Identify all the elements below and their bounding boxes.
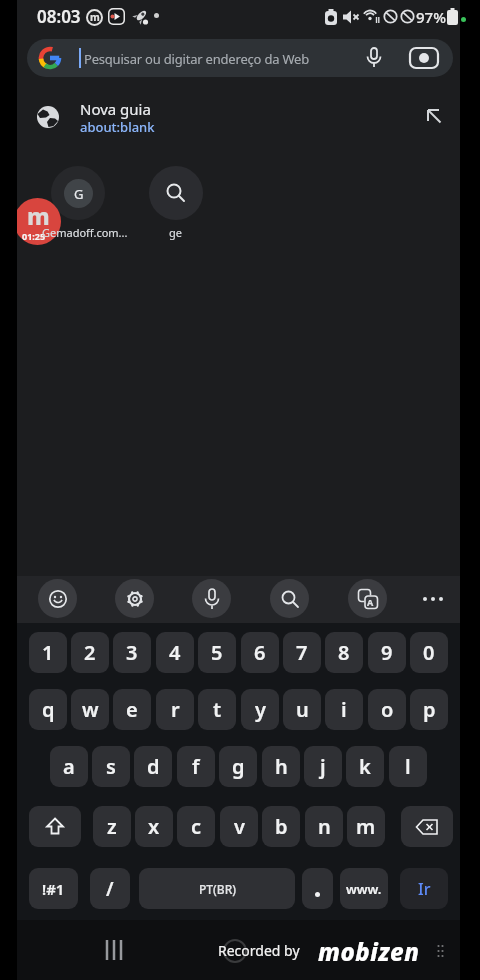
- staticText: 01:25: [22, 230, 46, 242]
- staticText: 08:03: [37, 5, 81, 28]
- button[interactable]: j: [304, 746, 342, 787]
- staticText: Gemadoff.com...: [42, 225, 128, 240]
- staticText: mobizen: [318, 935, 420, 968]
- button[interactable]: 2: [71, 632, 109, 673]
- button[interactable]: o: [368, 689, 406, 730]
- button[interactable]: Nova guia: [17, 88, 460, 143]
- button[interactable]: f: [177, 746, 215, 787]
- button[interactable]: w: [71, 689, 109, 730]
- staticText: m: [27, 200, 50, 231]
- staticText: q: [42, 696, 55, 723]
- button[interactable]: s: [92, 746, 130, 787]
- staticText: a: [63, 753, 75, 780]
- button[interactable]: 0: [410, 632, 448, 673]
- staticText: Pesquisar ou digitar endereço da Web: [84, 50, 310, 68]
- button[interactable]: [270, 579, 309, 618]
- button[interactable]: Pesquisar ou digitar endereço da Web: [27, 39, 453, 77]
- staticText: 97%: [416, 7, 446, 27]
- staticText: G: [74, 185, 84, 203]
- button[interactable]: e: [113, 689, 151, 730]
- button[interactable]: t: [198, 689, 236, 730]
- staticText: 0: [423, 639, 435, 666]
- button[interactable]: www.: [340, 868, 388, 909]
- staticText: PT(BR): [199, 881, 236, 897]
- staticText: s: [106, 753, 116, 780]
- staticText: m: [356, 813, 376, 840]
- button[interactable]: h: [262, 746, 300, 787]
- button[interactable]: k: [346, 746, 384, 787]
- staticText: d: [147, 753, 160, 780]
- button[interactable]: x: [135, 806, 173, 847]
- staticText: h: [275, 753, 288, 780]
- staticText: /: [106, 876, 114, 902]
- staticText: g: [232, 753, 245, 780]
- button[interactable]: z: [93, 806, 131, 847]
- button[interactable]: A: [348, 579, 387, 618]
- button[interactable]: 5: [198, 632, 236, 673]
- staticText: 8: [338, 639, 350, 666]
- staticText: 5: [211, 639, 223, 666]
- button[interactable]: 8: [325, 632, 363, 673]
- button[interactable]: [29, 806, 81, 847]
- staticText: u: [296, 696, 309, 723]
- button[interactable]: r: [156, 689, 194, 730]
- button[interactable]: [192, 579, 231, 618]
- staticText: y: [255, 696, 266, 723]
- staticText: about:blank: [80, 118, 155, 136]
- button[interactable]: u: [283, 689, 321, 730]
- staticText: n: [318, 813, 331, 840]
- button[interactable]: n: [305, 806, 343, 847]
- button[interactable]: c: [177, 806, 215, 847]
- button[interactable]: 3: [113, 632, 151, 673]
- staticText: Nova guia: [80, 99, 151, 119]
- staticText: i: [341, 696, 347, 723]
- button[interactable]: 9: [368, 632, 406, 673]
- button[interactable]: 7: [283, 632, 321, 673]
- staticText: 3: [126, 639, 138, 666]
- staticText: 4: [169, 639, 181, 666]
- button[interactable]: [414, 580, 452, 618]
- staticText: c: [191, 813, 202, 840]
- button[interactable]: v: [220, 806, 258, 847]
- staticText: t: [213, 696, 222, 723]
- button[interactable]: G: [51, 166, 105, 220]
- button[interactable]: q: [29, 689, 67, 730]
- staticText: j: [320, 753, 326, 780]
- button[interactable]: !#1: [29, 868, 78, 909]
- staticText: ge: [169, 225, 182, 240]
- button[interactable]: [115, 579, 154, 618]
- button[interactable]: Ir: [400, 868, 448, 909]
- button[interactable]: 6: [241, 632, 279, 673]
- staticText: 1: [42, 639, 54, 666]
- staticText: 6: [254, 639, 266, 666]
- staticText: 7: [296, 639, 308, 666]
- staticText: 9: [381, 639, 393, 666]
- button[interactable]: p: [410, 689, 448, 730]
- button[interactable]: PT(BR): [139, 868, 295, 909]
- staticText: A: [367, 596, 374, 608]
- button[interactable]: [149, 166, 203, 220]
- button[interactable]: 1: [29, 632, 67, 673]
- staticText: Ir: [418, 878, 431, 900]
- staticText: w: [82, 696, 99, 723]
- staticText: b: [275, 813, 288, 840]
- button[interactable]: b: [262, 806, 300, 847]
- staticText: x: [148, 813, 160, 840]
- button[interactable]: a: [50, 746, 88, 787]
- button[interactable]: [38, 579, 77, 618]
- staticText: e: [126, 696, 138, 723]
- button[interactable]: i: [325, 689, 363, 730]
- button[interactable]: 4: [156, 632, 194, 673]
- button[interactable]: /: [90, 868, 130, 909]
- staticText: 2: [84, 639, 96, 666]
- button[interactable]: [302, 868, 333, 909]
- button[interactable]: d: [134, 746, 172, 787]
- button[interactable]: l: [389, 746, 427, 787]
- staticText: www.: [346, 880, 382, 898]
- button[interactable]: g: [219, 746, 257, 787]
- staticText: Recorded by: [218, 941, 300, 960]
- button[interactable]: [401, 806, 453, 847]
- button[interactable]: y: [241, 689, 279, 730]
- staticText: v: [234, 813, 245, 840]
- button[interactable]: m: [347, 806, 385, 847]
